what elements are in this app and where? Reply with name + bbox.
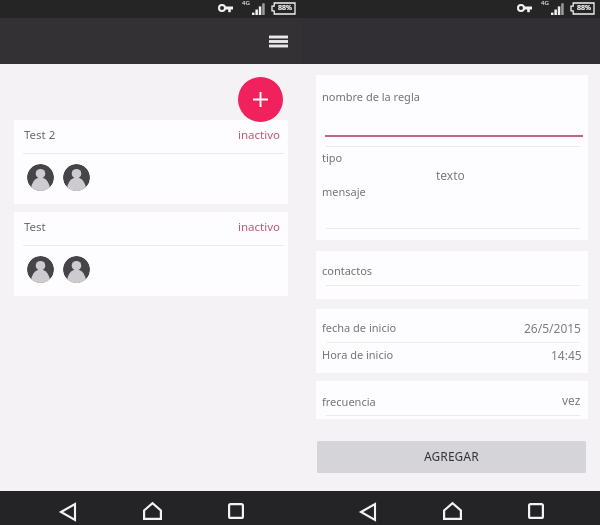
button[interactable]: Home: [134, 491, 168, 525]
button[interactable]: contactos: [316, 251, 588, 299]
button[interactable]: Back: [50, 491, 84, 525]
staticText: frecuencia: [322, 394, 376, 409]
staticText: 4G: [541, 0, 549, 7]
button[interactable]: Back: [350, 491, 384, 525]
staticText: fecha de inicio: [322, 320, 397, 335]
staticText: nombre de la regla: [322, 89, 420, 104]
staticText: 14:45: [551, 347, 582, 363]
staticText: 88%: [278, 3, 292, 13]
button[interactable]: [316, 309, 588, 342]
button[interactable]: nombre de la regla: [316, 75, 588, 133]
staticText: Test: [24, 219, 46, 235]
button[interactable]: AGREGAR: [317, 441, 586, 473]
button[interactable]: [316, 342, 588, 373]
staticText: 26/5/2015: [524, 320, 581, 336]
staticText: AGREGAR: [424, 448, 479, 464]
button[interactable]: Recent apps: [217, 491, 251, 525]
staticText: 4G: [242, 0, 250, 7]
button[interactable]: Test: [14, 212, 288, 296]
staticText: vez: [562, 392, 581, 408]
staticText: tipo: [322, 150, 343, 165]
staticText: Hora de inicio: [322, 347, 394, 362]
staticText: inactivo: [238, 219, 280, 235]
button[interactable]: Menu: [260, 23, 296, 59]
button[interactable]: Add rule: [238, 77, 283, 122]
staticText: Test 2: [24, 127, 56, 143]
staticText: texto: [436, 167, 465, 183]
button[interactable]: Test 2: [14, 120, 288, 204]
button[interactable]: Home: [434, 491, 468, 525]
button[interactable]: Recent apps: [517, 491, 551, 525]
staticText: contactos: [322, 263, 373, 278]
staticText: mensaje: [322, 184, 366, 199]
staticText: inactivo: [238, 127, 280, 143]
staticText: 88%: [577, 3, 591, 13]
button[interactable]: frecuencia: [316, 381, 588, 419]
